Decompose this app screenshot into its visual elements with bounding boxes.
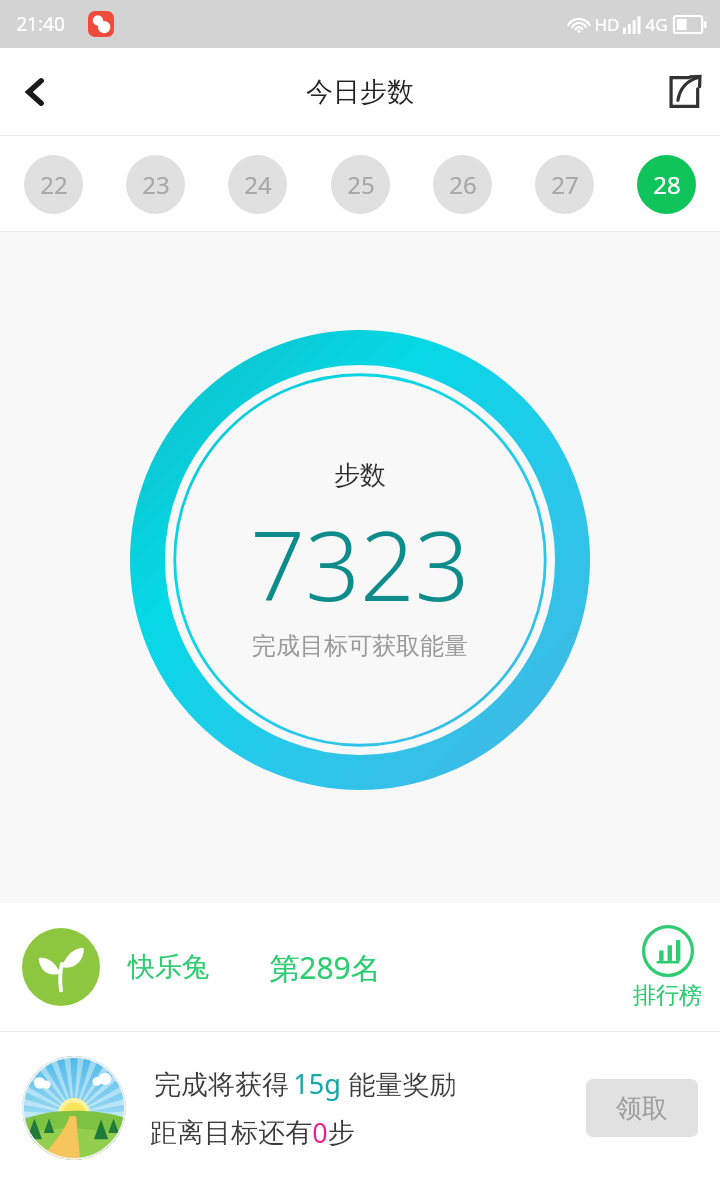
staticText: 快乐兔 <box>128 950 209 984</box>
staticText: 24 <box>244 168 272 201</box>
staticText: 步数 <box>334 459 386 492</box>
staticText: 第289名 <box>269 947 381 988</box>
staticText: 26 <box>449 168 477 201</box>
button[interactable]: Share <box>648 56 720 128</box>
staticText: 0 <box>312 1114 328 1151</box>
staticText: 25 <box>347 168 375 201</box>
staticText: 22 <box>40 168 68 201</box>
button[interactable]: 26 <box>433 155 492 214</box>
staticText: 能量奖励 <box>341 1065 457 1102</box>
staticText: 27 <box>551 168 579 201</box>
button[interactable]: Back <box>0 56 72 128</box>
button[interactable]: 28 <box>637 155 696 214</box>
staticText: 15g <box>293 1065 341 1102</box>
button[interactable]: 24 <box>228 155 287 214</box>
staticText: 今日步数 <box>306 75 414 109</box>
button[interactable]: 23 <box>126 155 185 214</box>
button[interactable]: 22 <box>24 155 83 214</box>
staticText: 28 <box>653 168 681 201</box>
staticText: 7323 <box>250 498 470 629</box>
staticText: HD <box>594 13 620 36</box>
staticText: 距离目标还有 <box>150 1116 312 1150</box>
staticText: 23 <box>142 168 170 201</box>
staticText: 4G <box>645 13 668 36</box>
button[interactable]: 排行榜 <box>633 925 702 1010</box>
staticText: 领取 <box>616 1092 668 1125</box>
staticText: 完成目标可获取能量 <box>252 631 468 661</box>
button[interactable]: 27 <box>535 155 594 214</box>
staticText: 完成将获得 <box>150 1065 293 1102</box>
staticText: 21:40 <box>16 11 65 37</box>
button[interactable]: 领取 <box>586 1079 698 1137</box>
staticText: 步 <box>328 1116 355 1150</box>
staticText: 排行榜 <box>633 981 702 1010</box>
button[interactable]: 快乐兔 <box>22 928 381 1006</box>
button[interactable]: 25 <box>331 155 390 214</box>
